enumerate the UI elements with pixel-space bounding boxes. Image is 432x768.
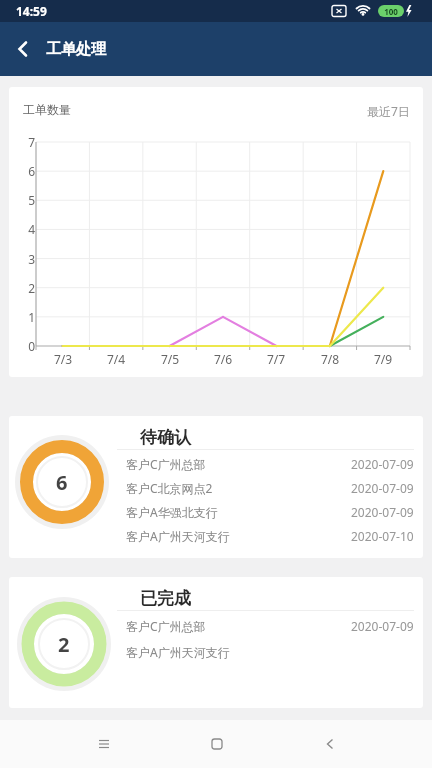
staticText: 14:59	[16, 3, 47, 19]
staticText: 7/6	[209, 351, 237, 367]
staticText: 4	[23, 221, 35, 237]
staticText: 工单处理	[46, 40, 106, 59]
button[interactable]: 客户C广州总部	[117, 452, 414, 476]
staticText: 已完成	[140, 588, 191, 609]
staticText: 客户C北京网点2	[126, 480, 351, 496]
button[interactable]: 客户A华强北支行	[117, 500, 414, 524]
button[interactable]	[47, 720, 160, 768]
staticText: 2020-07-09	[351, 504, 414, 520]
staticText: 7/9	[369, 351, 397, 367]
staticText: 2020-07-10	[351, 528, 414, 544]
staticText: 7/5	[156, 351, 184, 367]
staticText: 客户C广州总部	[126, 456, 351, 472]
staticText: 最近7日	[367, 103, 410, 119]
staticText: 客户A广州天河支行	[126, 644, 414, 660]
staticText: 2020-07-09	[351, 618, 414, 634]
staticText: 0	[23, 338, 35, 354]
staticText: 客户A华强北支行	[126, 504, 351, 520]
button[interactable]	[160, 720, 273, 768]
staticText: 2	[58, 631, 70, 658]
button[interactable]: 客户C广州总部	[117, 613, 414, 639]
staticText: 客户C广州总部	[126, 618, 351, 634]
staticText: 6	[56, 469, 68, 496]
staticText: 待确认	[140, 427, 191, 448]
staticText: 2	[23, 280, 35, 296]
button[interactable]: 客户A广州天河支行	[117, 639, 414, 665]
staticText: 6	[23, 163, 35, 179]
button[interactable]: 客户C北京网点2	[117, 476, 414, 500]
staticText: 客户A广州天河支行	[126, 528, 351, 544]
button[interactable]	[0, 22, 46, 76]
staticText: 100	[378, 6, 404, 17]
staticText: 1	[23, 309, 35, 325]
button[interactable]	[273, 720, 386, 768]
staticText: 5	[23, 192, 35, 208]
button[interactable]: 6	[16, 436, 108, 528]
staticText: 3	[23, 251, 35, 267]
button[interactable]: 2	[18, 598, 110, 690]
staticText: 7/8	[316, 351, 344, 367]
staticText: 工单数量	[23, 102, 71, 117]
staticText: 7/7	[262, 351, 290, 367]
staticText: 2020-07-09	[351, 480, 414, 496]
button[interactable]: 客户A广州天河支行	[117, 524, 414, 548]
staticText: 7/4	[102, 351, 130, 367]
staticText: 7	[23, 134, 35, 150]
staticText: 7/3	[49, 351, 77, 367]
staticText: 2020-07-09	[351, 456, 414, 472]
